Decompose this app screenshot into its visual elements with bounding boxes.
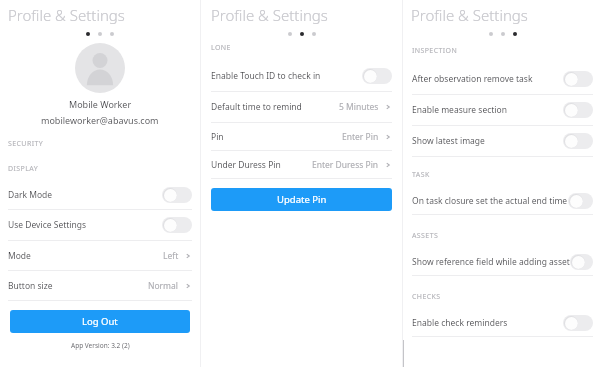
staticText: After observation remove task — [412, 73, 533, 85]
button[interactable]: Toggle setting — [563, 315, 593, 331]
button[interactable]: Show reference field while adding asset — [403, 249, 602, 275]
staticText: Pin — [211, 131, 224, 143]
staticText: On task closure set the actual end time — [412, 195, 568, 207]
button[interactable]: Toggle setting — [362, 68, 392, 84]
button[interactable]: Enable check reminders — [403, 310, 602, 336]
staticText: ASSETS — [412, 231, 439, 241]
staticText: Show latest image — [412, 135, 485, 147]
button[interactable]: Use Device Settings — [0, 210, 200, 240]
button[interactable]: Toggle setting — [563, 102, 593, 118]
staticText: Default time to remind — [211, 101, 302, 113]
staticText: SECURITY — [8, 139, 44, 149]
button[interactable]: Toggle setting — [563, 133, 593, 149]
staticText: Normal — [148, 280, 179, 292]
staticText: INSPECTION — [412, 46, 458, 56]
staticText: Dark Mode — [8, 189, 53, 201]
button[interactable]: Under Duress Pin — [201, 151, 402, 178]
button[interactable]: On task closure set the actual end time — [403, 188, 602, 214]
button[interactable]: Toggle setting — [162, 217, 192, 233]
staticText: Mode — [8, 250, 31, 262]
button[interactable]: Update Pin — [211, 188, 392, 211]
button[interactable]: Dark Mode — [0, 181, 200, 209]
staticText: Profile & Settings — [211, 5, 328, 25]
staticText: Enable check reminders — [412, 317, 508, 329]
staticText: Log Out — [82, 315, 118, 328]
staticText: App Version: 3.2 (2) — [71, 341, 130, 350]
staticText: Enter Duress Pin — [312, 159, 379, 171]
staticText: Show reference field while adding asset — [412, 256, 570, 268]
staticText: TASK — [412, 170, 430, 180]
button[interactable]: Toggle setting — [570, 254, 593, 270]
staticText: 5 Minutes — [339, 101, 379, 113]
staticText: Enter Pin — [342, 131, 379, 143]
staticText: Profile & Settings — [8, 5, 125, 25]
button[interactable]: Toggle setting — [162, 187, 192, 203]
button[interactable]: After observation remove task — [403, 64, 602, 94]
button[interactable]: Mode — [0, 241, 200, 270]
staticText: Left — [163, 250, 179, 262]
staticText: DISPLAY — [8, 164, 39, 174]
button[interactable]: Toggle setting — [563, 71, 593, 87]
staticText: CHECKS — [412, 292, 441, 302]
staticText: Under Duress Pin — [211, 159, 281, 171]
button[interactable]: Toggle setting — [568, 193, 593, 209]
staticText: Update Pin — [277, 193, 327, 206]
button[interactable]: Pin — [201, 123, 402, 150]
staticText: Use Device Settings — [8, 219, 87, 231]
staticText: LONE — [211, 43, 231, 53]
button[interactable]: Show latest image — [403, 126, 602, 156]
button[interactable]: Default time to remind — [201, 92, 402, 122]
staticText: Enable measure section — [412, 104, 507, 116]
staticText: Mobile Worker — [69, 98, 132, 110]
button[interactable]: Enable measure section — [403, 95, 602, 125]
button[interactable]: Enable Touch ID to check in — [201, 61, 402, 91]
staticText: Button size — [8, 280, 53, 292]
staticText: mobileworker@abavus.com — [41, 114, 159, 126]
staticText: Profile & Settings — [411, 5, 528, 25]
staticText: Enable Touch ID to check in — [211, 70, 321, 82]
button[interactable]: Log Out — [10, 310, 190, 333]
button[interactable]: Button size — [0, 271, 200, 300]
